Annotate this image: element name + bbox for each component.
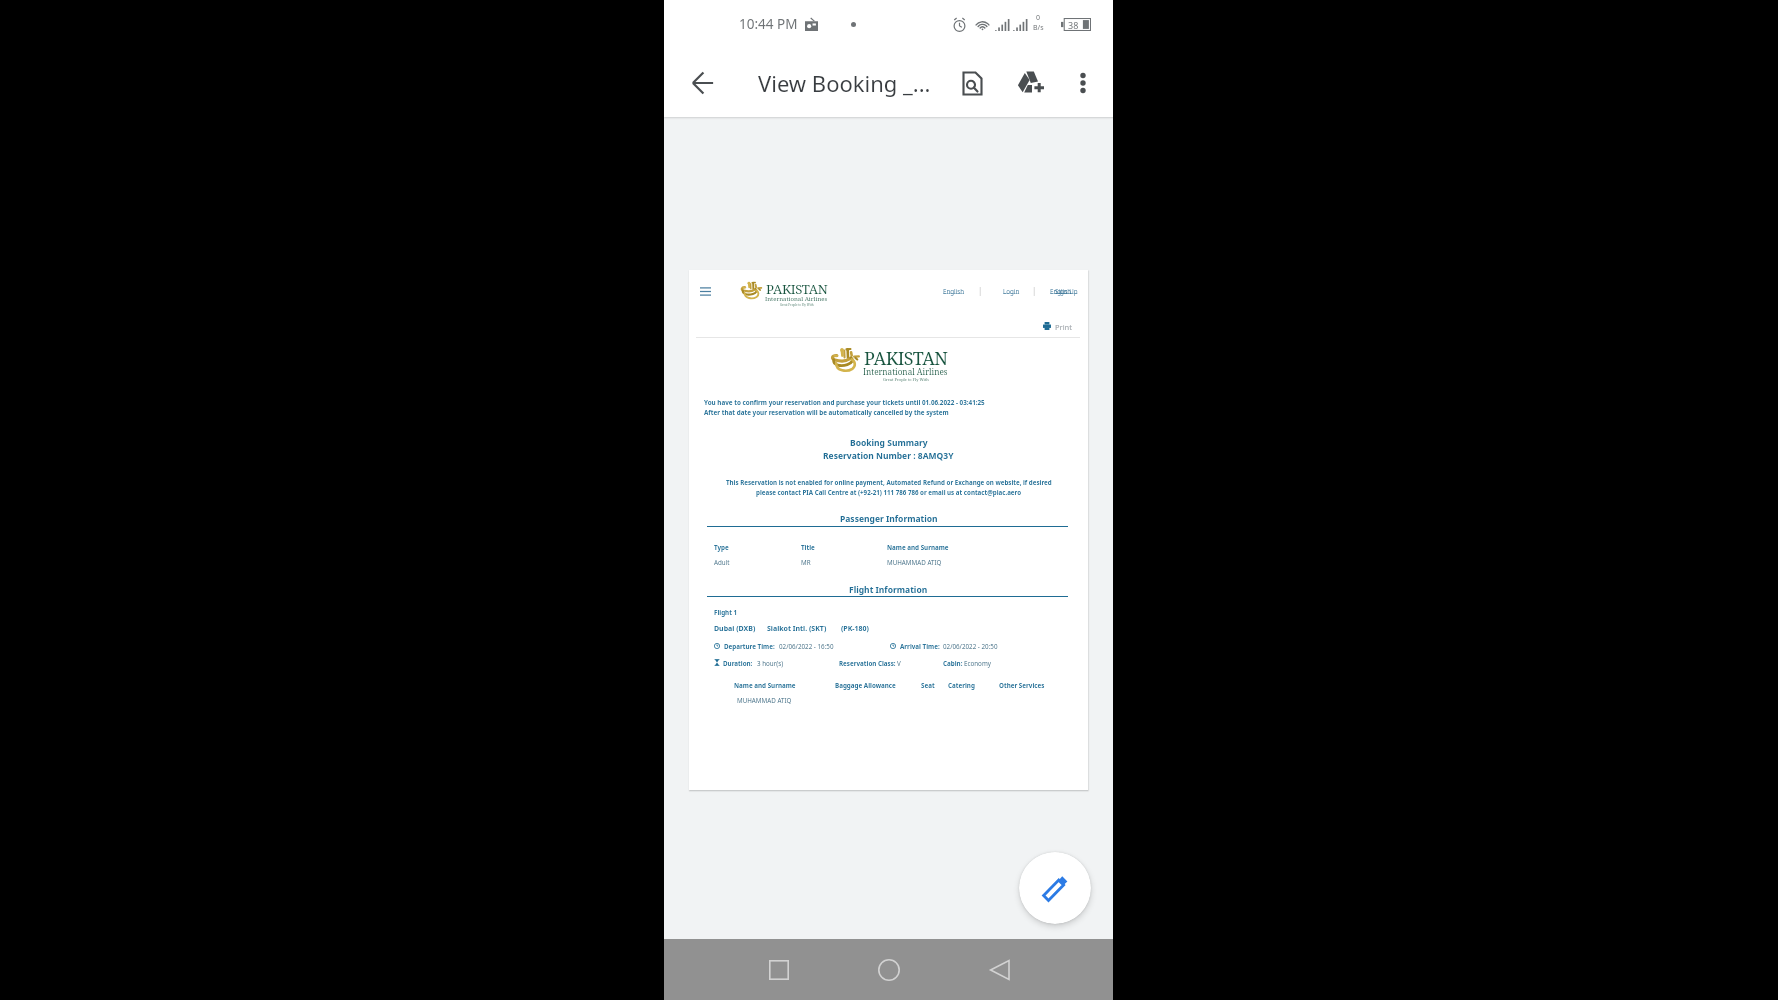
staticText: Sialkot Intl. (SKT) [767, 624, 827, 634]
staticText: Duration: [723, 659, 753, 668]
staticText: please contact PIA Call Centre at (+92-2… [756, 488, 1022, 496]
staticText: You have to confirm your reservation and… [704, 398, 985, 407]
staticText: International Airlines [863, 366, 948, 377]
staticText: | [978, 285, 983, 296]
staticText: 10:44 PM [739, 15, 798, 33]
staticText: Title [801, 543, 815, 552]
staticText: Print [1055, 322, 1072, 332]
staticText: B/s [1033, 23, 1044, 33]
button[interactable]: English [1050, 287, 1072, 295]
staticText: International Airlines [765, 295, 828, 303]
staticText: Great People to Fly With [883, 377, 929, 382]
staticText: Sign Up [1055, 287, 1078, 295]
staticText: Adult [714, 558, 730, 567]
button[interactable]: Find in document [951, 62, 993, 104]
staticText: Reservation Number : 8AMQ3Y [823, 450, 954, 462]
staticText: Catering [948, 681, 975, 690]
staticText: Reservation Class: [839, 659, 896, 668]
button[interactable]: Recents [753, 944, 805, 996]
staticText: Arrival Time: [900, 642, 940, 651]
staticText: Type [714, 543, 729, 552]
button[interactable]: More options [1065, 65, 1101, 101]
staticText: Booking Summary [850, 437, 928, 449]
staticText: English [1050, 287, 1072, 295]
button[interactable]: Back [681, 61, 725, 105]
staticText: Login [1003, 287, 1020, 295]
staticText: 3 hour(s) [757, 659, 784, 668]
staticText: 02/06/2022 - 20:50 [943, 642, 998, 651]
staticText: Cabin: [943, 659, 963, 668]
staticText: (PK-180) [841, 624, 869, 634]
staticText: PAKISTAN [864, 346, 948, 370]
staticText: Departure Time: [724, 642, 775, 651]
staticText: PAKISTAN [766, 280, 828, 298]
staticText: This Reservation is not enabled for onli… [726, 478, 1052, 486]
staticText: Other Services [999, 681, 1045, 690]
staticText: Baggage Allowance [835, 681, 896, 690]
staticText: Great People to Fly With [780, 303, 814, 307]
button[interactable]: Add to Drive [1011, 62, 1053, 104]
button[interactable]: Back [974, 944, 1026, 996]
staticText: MUHAMMAD ATIQ [887, 558, 942, 567]
button[interactable]: Sign Up [1055, 287, 1078, 295]
staticText: V [897, 659, 901, 668]
staticText: Flight Information [849, 584, 928, 596]
staticText: MR [801, 558, 811, 567]
staticText: Name and Surname [887, 543, 949, 552]
staticText: Name and Surname [734, 681, 796, 690]
staticText: Flight 1 [714, 608, 738, 617]
staticText: 38 [1068, 19, 1079, 31]
staticText: | [1032, 285, 1037, 296]
staticText: English [943, 287, 965, 295]
button[interactable]: Home [863, 944, 915, 996]
staticText: After that date your reservation will be… [704, 408, 949, 417]
staticText: MUHAMMAD ATIQ [737, 696, 792, 705]
staticText: Dubai (DXB) [714, 624, 756, 634]
button[interactable]: English [943, 287, 965, 295]
staticText: Seat [921, 681, 935, 690]
button[interactable]: Login [1003, 287, 1020, 295]
staticText: 0 [1036, 13, 1041, 23]
staticText: 02/06/2022 - 16:50 [779, 642, 834, 651]
button[interactable]: Edit [1019, 852, 1091, 924]
staticText: View Booking _... [758, 68, 931, 98]
staticText: Economy [964, 659, 991, 668]
staticText: Passenger Information [840, 513, 938, 525]
